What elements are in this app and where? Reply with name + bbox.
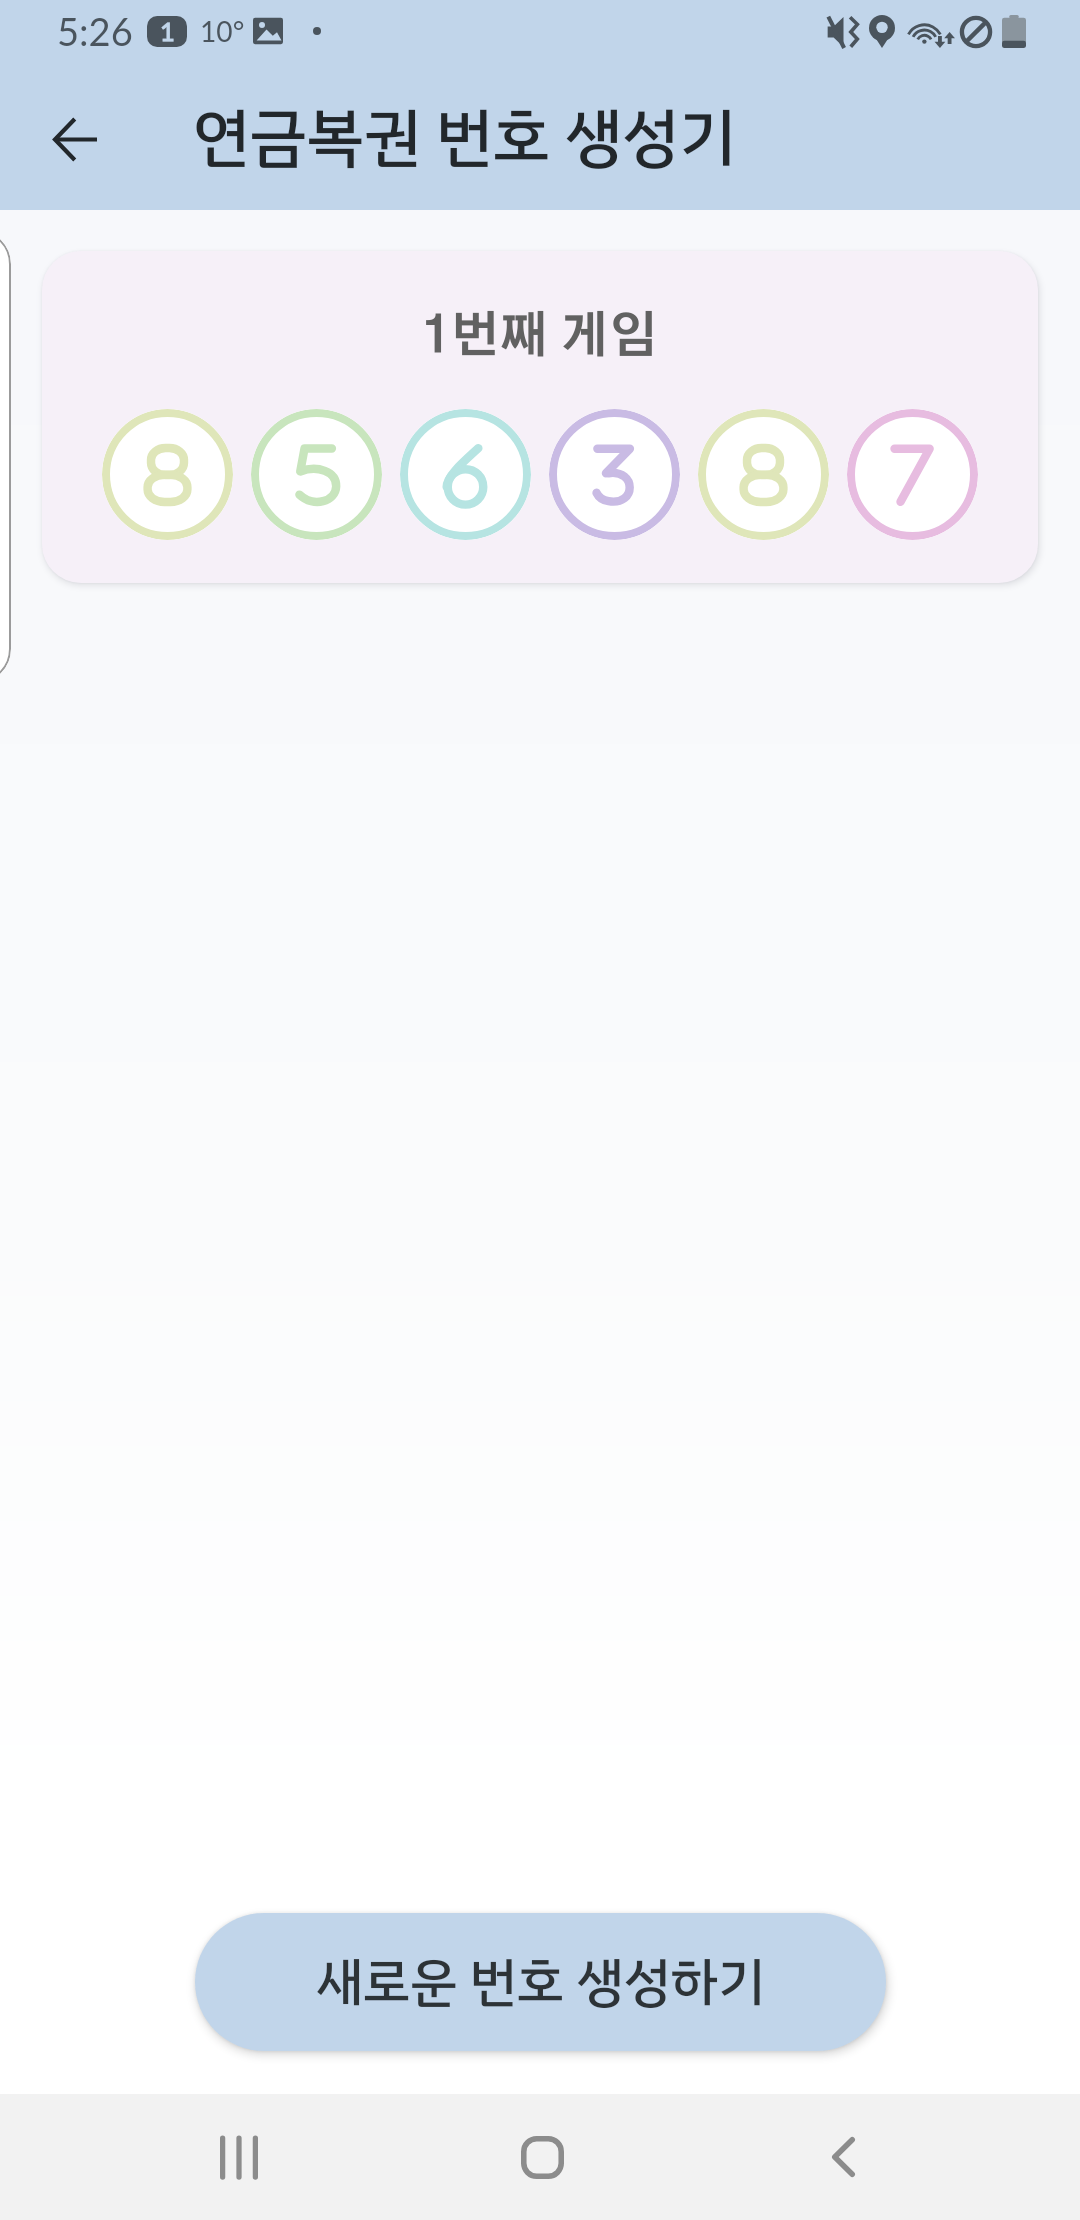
button[interactable]: Recent apps <box>161 2094 317 2220</box>
button[interactable]: Back <box>4 69 148 209</box>
staticText: 연금복권 번호 생성기 <box>193 90 737 186</box>
button[interactable]: 1번째 게임 <box>42 251 1038 583</box>
button[interactable]: Back <box>765 2094 921 2220</box>
button[interactable]: Home <box>464 2094 620 2220</box>
staticText: 1번째 게임 <box>422 313 658 362</box>
button[interactable]: 새로운 번호 생성하기 <box>195 1913 886 2051</box>
staticText: 10° <box>200 14 245 48</box>
staticText: 5:26 <box>57 8 133 54</box>
staticText: 새로운 번호 생성하기 <box>316 1943 765 2022</box>
staticText: 1 <box>160 16 175 47</box>
